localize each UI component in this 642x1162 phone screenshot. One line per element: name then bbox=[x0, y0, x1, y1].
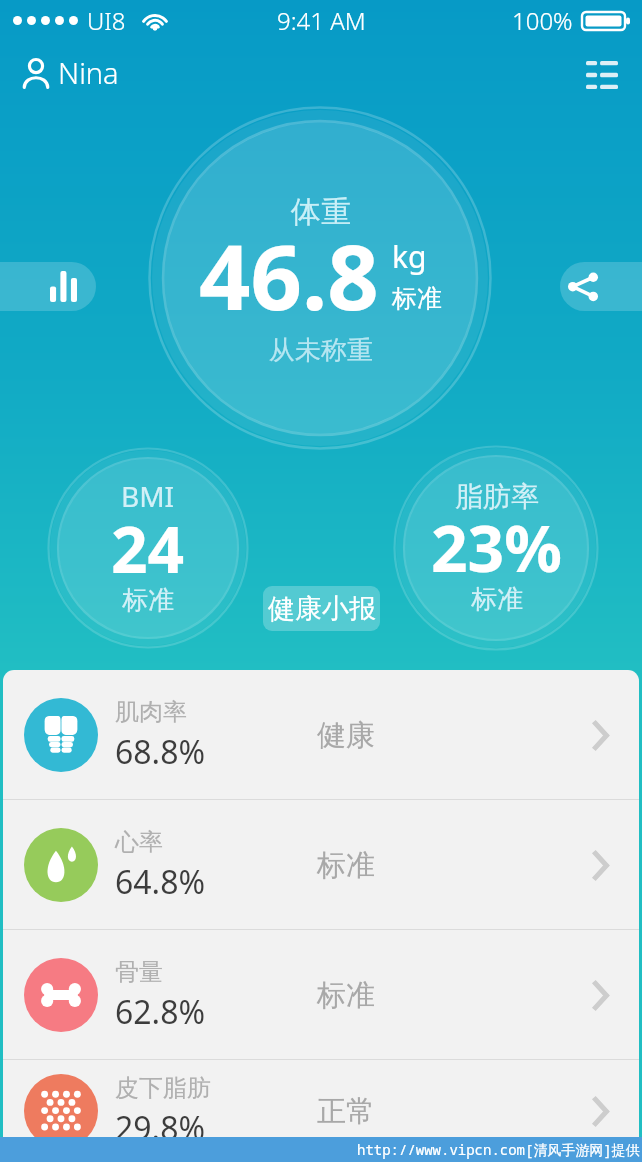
staticText: 68.8% bbox=[115, 730, 206, 774]
staticText: 标准 bbox=[317, 977, 375, 1014]
staticText: 标准 bbox=[122, 584, 174, 617]
staticText: 62.8% bbox=[115, 990, 206, 1034]
staticText: 正常 bbox=[317, 1093, 375, 1130]
staticText: 标准 bbox=[317, 847, 375, 884]
staticText: 46.8 bbox=[199, 214, 379, 337]
staticText: 标准 bbox=[471, 583, 523, 616]
staticText: 脂肪率 bbox=[455, 479, 539, 514]
staticText: Nina bbox=[58, 53, 119, 92]
staticText: 23% bbox=[431, 504, 562, 591]
staticText: 64.8% bbox=[115, 860, 206, 904]
staticText: 标准 bbox=[392, 283, 442, 314]
staticText: 100% bbox=[512, 4, 573, 37]
button[interactable]: 心率 bbox=[3, 800, 639, 930]
staticText: 心率 bbox=[115, 827, 163, 857]
staticText: 9:41 AM bbox=[277, 4, 366, 37]
button[interactable]: 体重 bbox=[148, 106, 492, 450]
staticText: 皮下脂肪 bbox=[115, 1073, 211, 1103]
staticText: 从未称重 bbox=[269, 334, 373, 367]
staticText: 健康小报 bbox=[268, 592, 376, 626]
button[interactable]: 皮下脂肪 bbox=[3, 1060, 639, 1162]
button[interactable]: Menu bbox=[578, 51, 626, 99]
button[interactable]: Statistics bbox=[0, 262, 96, 311]
staticText: kg bbox=[392, 236, 427, 277]
staticText: 健康 bbox=[317, 717, 375, 754]
staticText: UI8 bbox=[87, 4, 126, 37]
button[interactable]: 肌肉率 bbox=[3, 670, 639, 800]
staticText: 24 bbox=[111, 505, 185, 592]
staticText: 肌肉率 bbox=[115, 697, 187, 727]
button[interactable]: BMI bbox=[47, 447, 249, 649]
button[interactable]: 脂肪率 bbox=[393, 445, 599, 651]
staticText: 体重 bbox=[291, 193, 351, 231]
staticText: http://www.vipcn.com[清风手游网]提供 bbox=[357, 1140, 640, 1159]
button[interactable]: 骨量 bbox=[3, 930, 639, 1060]
staticText: 29.8% bbox=[115, 1106, 206, 1150]
button[interactable]: 健康小报 bbox=[263, 586, 380, 631]
staticText: BMI bbox=[121, 477, 175, 515]
button[interactable]: Nina bbox=[0, 47, 131, 98]
button[interactable]: Share bbox=[560, 262, 642, 311]
staticText: 骨量 bbox=[115, 957, 163, 987]
